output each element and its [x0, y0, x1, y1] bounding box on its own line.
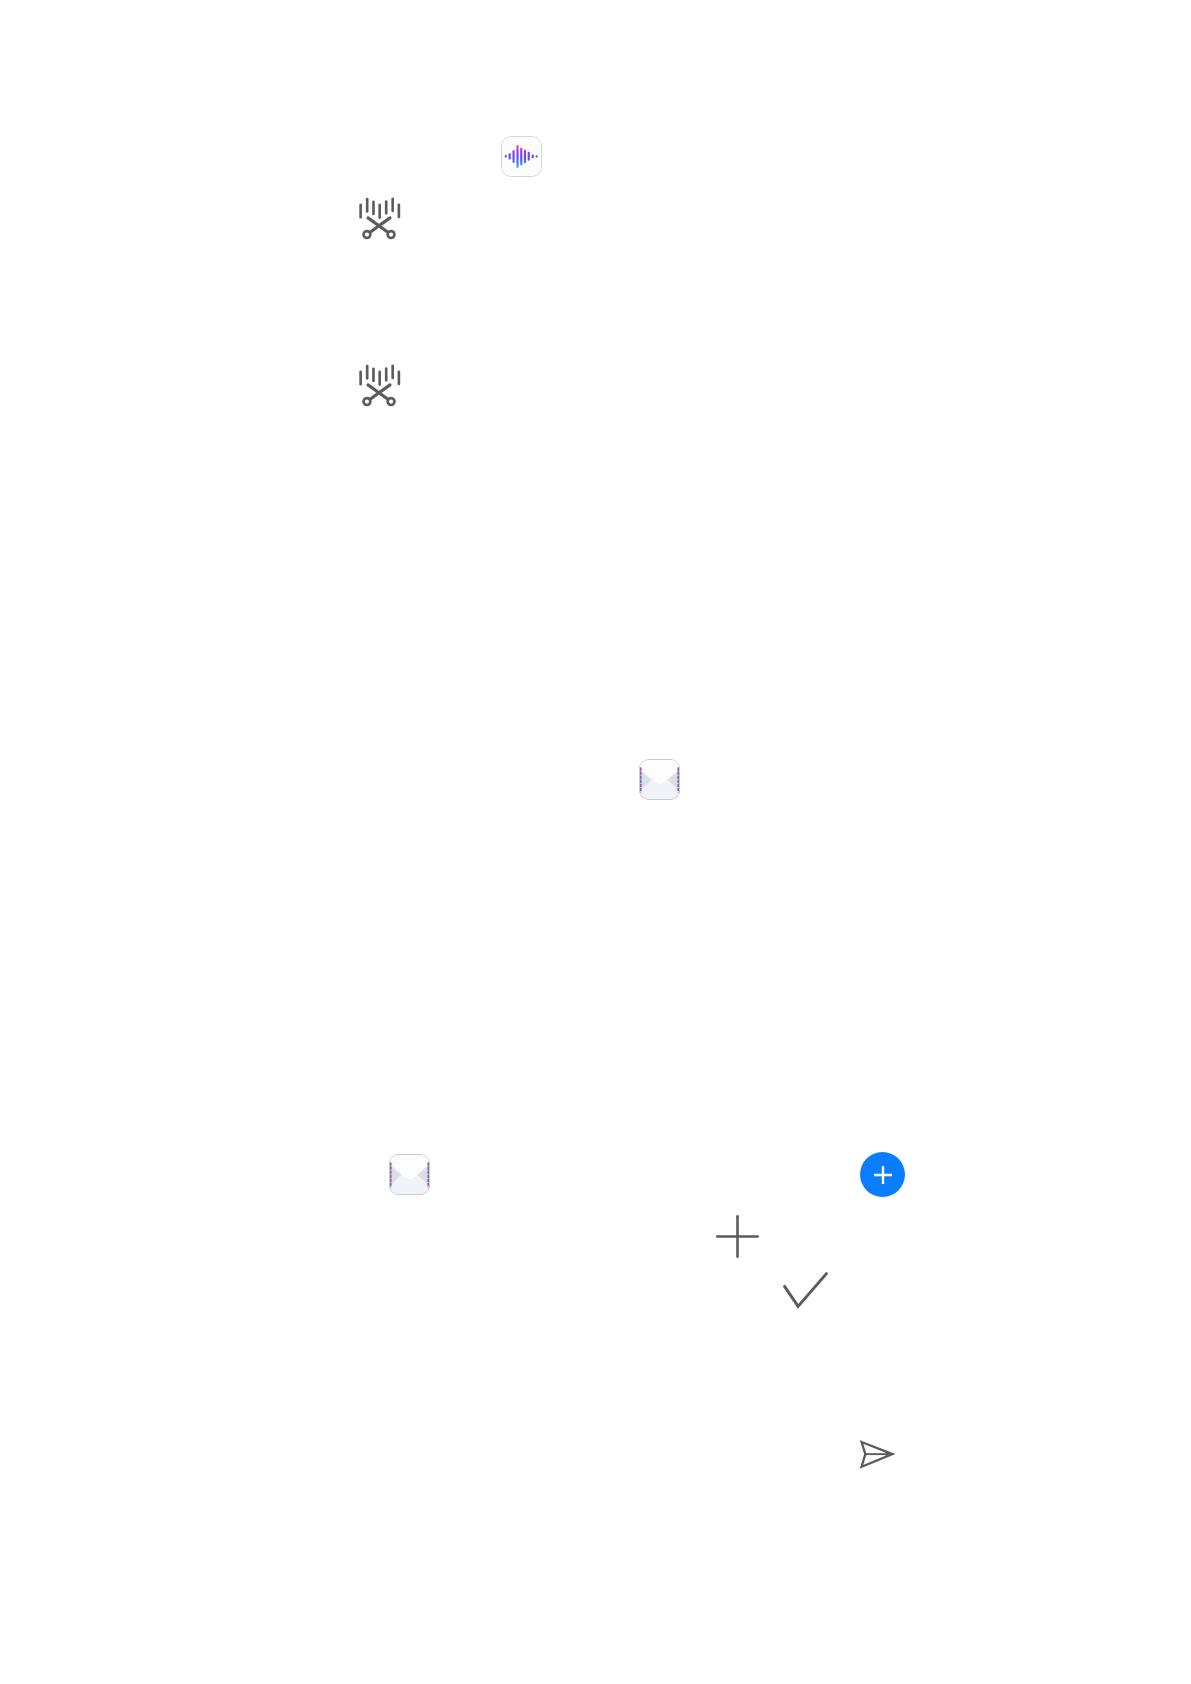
button[interactable]: Mail: [639, 759, 680, 800]
button[interactable]: Trim audio: [358, 197, 400, 239]
button[interactable]: Add: [716, 1215, 759, 1258]
button[interactable]: Trim audio: [358, 364, 400, 406]
button[interactable]: Add: [860, 1152, 905, 1197]
button[interactable]: Mail: [389, 1154, 430, 1195]
button[interactable]: Voice recording: [501, 136, 542, 177]
button[interactable]: Send: [860, 1440, 894, 1468]
button[interactable]: Done: [783, 1272, 828, 1308]
